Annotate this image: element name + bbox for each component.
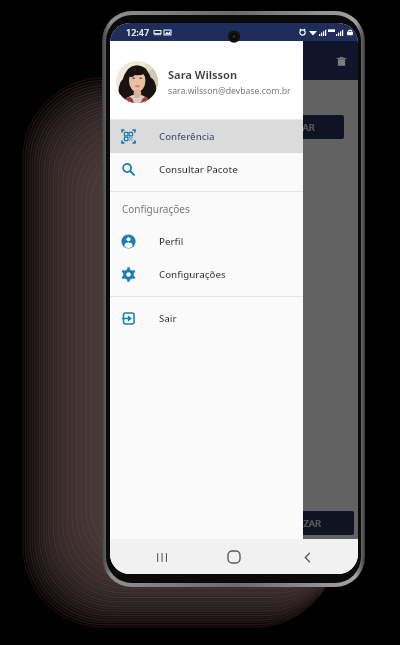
button[interactable]: Excluir [328,48,354,74]
staticText: Conferência [159,130,215,143]
staticText: FINALIZAR [273,517,322,530]
button[interactable]: Início [219,542,249,572]
button[interactable]: Configurações [110,258,303,291]
staticText: sara.wilsson@devbase.com.br [168,85,291,97]
button[interactable]: Conferência [110,120,303,153]
button[interactable]: Perfil [110,225,303,258]
button[interactable]: Voltar [292,542,322,572]
staticText: Configurações [159,268,226,281]
button[interactable]: Recentes [146,542,176,572]
button[interactable]: CONSULTAR [230,115,344,139]
button[interactable]: Consultar Pacote [110,153,303,186]
staticText: Consultar Pacote [159,163,238,176]
staticText: CONSULTAR [260,121,315,134]
staticText: 12:47 [126,26,150,38]
staticText: Perfil [159,235,184,248]
staticText: Sair [159,312,177,325]
button[interactable]: Sair [110,302,303,335]
staticText: Configurações [122,202,190,216]
button[interactable]: FINALIZAR [240,511,354,535]
staticText: Sara Wilsson [168,67,238,82]
